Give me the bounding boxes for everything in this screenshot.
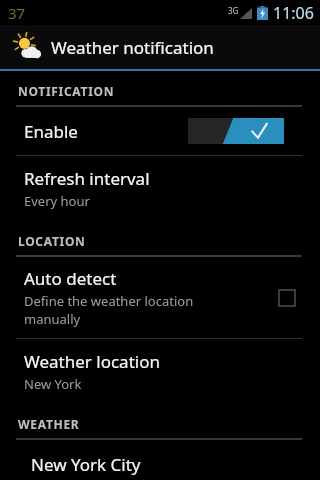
staticText: New York City [31, 453, 141, 476]
staticText: 3G [228, 5, 239, 16]
staticText: Refresh interval [24, 167, 150, 190]
button[interactable]: Enable notifications toggle [188, 118, 284, 144]
staticText: Weather notification [51, 36, 214, 59]
staticText: Auto detect [24, 267, 117, 290]
staticText: New York [24, 375, 82, 393]
staticText: 11:06 [273, 2, 314, 24]
staticText: Weather location [24, 350, 160, 373]
button[interactable]: New York City [0, 453, 320, 476]
button[interactable]: Weather [0, 25, 320, 69]
staticText: Every hour [24, 192, 90, 210]
button[interactable]: Auto detect checkbox [272, 283, 302, 313]
staticText: Enable notifications [24, 120, 176, 143]
button[interactable]: Auto detect [0, 257, 320, 338]
staticText: 37 [8, 3, 26, 23]
button[interactable]: Enable notifications [0, 107, 320, 155]
staticText: NOTIFICATION [18, 83, 115, 99]
staticText: Define the weather location manually [24, 292, 206, 328]
button[interactable]: Weather location [0, 339, 320, 404]
button[interactable]: Refresh interval [0, 156, 320, 221]
staticText: WEATHER [18, 416, 80, 432]
staticText: LOCATION [18, 233, 86, 249]
other: Weather [13, 33, 41, 61]
